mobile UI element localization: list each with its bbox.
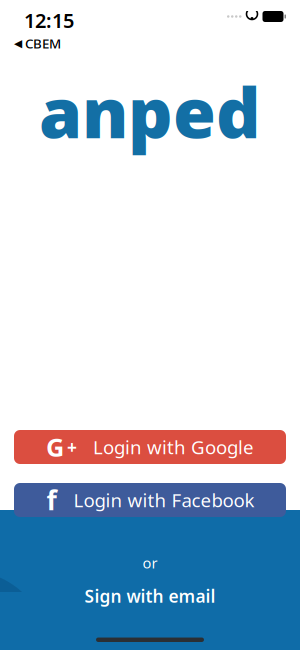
staticText: Login with Facebook	[73, 488, 254, 512]
staticText: CBEM	[25, 35, 61, 52]
staticText: ◀	[14, 37, 22, 49]
staticText: Sign with email	[84, 584, 215, 607]
staticText: Login with Google	[93, 435, 254, 459]
staticText: +	[67, 435, 77, 458]
staticText: f	[46, 482, 56, 518]
button[interactable]: or	[0, 549, 300, 611]
staticText: G	[46, 430, 64, 464]
staticText: 12:15	[24, 7, 74, 34]
button[interactable]: f	[14, 483, 286, 517]
staticText: anped	[39, 65, 261, 157]
staticText: or	[142, 553, 157, 572]
button[interactable]: G	[14, 430, 286, 464]
